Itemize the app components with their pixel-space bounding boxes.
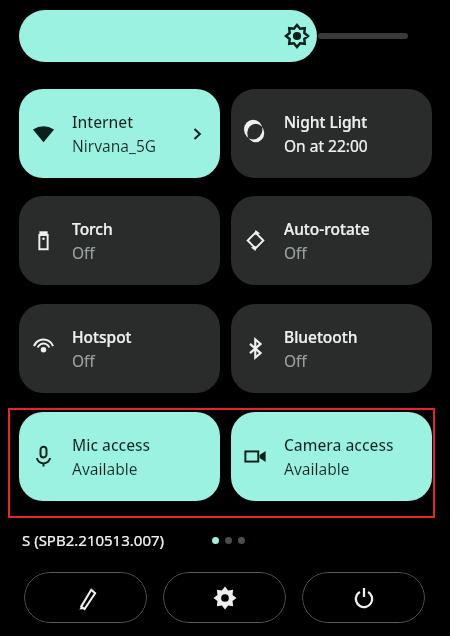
other: Brightness xyxy=(285,24,309,48)
button[interactable]: Auto-rotate xyxy=(231,196,432,285)
button[interactable]: Edit tiles xyxy=(24,572,147,623)
button[interactable]: Settings xyxy=(163,572,286,623)
button[interactable]: Camera access xyxy=(231,412,432,501)
button[interactable]: Internet xyxy=(19,89,220,178)
staticText: Off xyxy=(284,242,307,263)
staticText: Hotspot xyxy=(72,326,132,347)
staticText: Available xyxy=(72,458,138,479)
button[interactable]: Hotspot xyxy=(19,304,220,393)
staticText: Nirvana_5G xyxy=(72,135,157,156)
staticText: Auto-rotate xyxy=(284,218,370,239)
staticText: Internet xyxy=(72,111,134,132)
staticText: Camera access xyxy=(284,434,394,455)
staticText: Off xyxy=(284,350,307,371)
staticText: Mic access xyxy=(72,434,151,455)
staticText: Night Light xyxy=(284,111,368,132)
staticText: Torch xyxy=(72,218,113,239)
button[interactable]: Brightness xyxy=(19,10,408,62)
button[interactable]: Power xyxy=(302,572,425,623)
staticText: Off xyxy=(72,350,95,371)
staticText: Off xyxy=(72,242,95,263)
button[interactable]: Mic access xyxy=(19,412,220,501)
staticText: S (SPB2.210513.007) xyxy=(22,530,165,550)
button[interactable]: Bluetooth xyxy=(231,304,432,393)
staticText: On at 22:00 xyxy=(284,135,368,156)
staticText: Available xyxy=(284,458,350,479)
staticText: Bluetooth xyxy=(284,326,358,347)
button[interactable]: Torch xyxy=(19,196,220,285)
button[interactable]: Night Light xyxy=(231,89,432,178)
